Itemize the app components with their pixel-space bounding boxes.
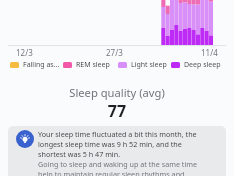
other: Sleep insight	[16, 130, 34, 148]
staticText: Light sleep	[131, 60, 167, 70]
staticText: REM sleep	[76, 60, 110, 70]
button[interactable]: Sleep insight	[8, 126, 226, 176]
staticText: 12/3	[16, 47, 33, 58]
button[interactable]: Deep sleep	[171, 60, 221, 70]
button[interactable]: Light sleep	[118, 60, 167, 70]
button[interactable]: Falling as…	[10, 60, 60, 70]
staticText: Going to sleep and waking up at the same…	[38, 159, 200, 176]
staticText: Sleep quality (avg)	[0, 85, 234, 100]
button[interactable]: REM sleep	[63, 60, 110, 70]
staticText: 77	[0, 100, 234, 122]
staticText: Deep sleep	[184, 60, 221, 70]
staticText: 11/4	[201, 47, 218, 58]
staticText: Falling as…	[23, 60, 60, 70]
staticText: 27/3	[106, 47, 123, 58]
staticText: Your sleep time fluctuated a bit this mo…	[38, 129, 200, 159]
